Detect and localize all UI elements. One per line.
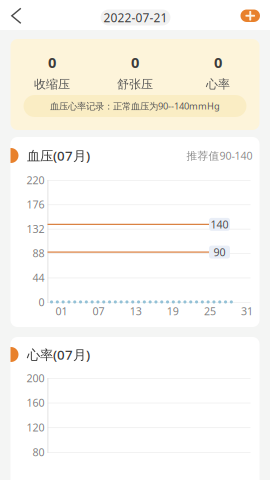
staticText: 0 — [38, 295, 44, 309]
staticText: 血压心率记录：正常血压为90--140mmHg — [50, 100, 220, 112]
staticText: 心率 — [206, 77, 230, 92]
staticText: 90 — [213, 245, 225, 259]
staticText: 31 — [241, 304, 253, 318]
staticText: 01 — [55, 304, 67, 318]
staticText: 25 — [204, 304, 216, 318]
staticText: 0 — [131, 52, 139, 72]
staticText: 舒张压 — [117, 77, 153, 92]
staticText: 2022-07-21 — [103, 9, 167, 25]
staticText: 160 — [26, 396, 44, 410]
staticText: 220 — [26, 173, 44, 187]
staticText: 44 — [32, 270, 44, 285]
staticText: 176 — [26, 197, 44, 211]
button[interactable]: Add record — [237, 6, 263, 25]
staticText: 血压(07月) — [27, 147, 90, 164]
staticText: 88 — [32, 246, 44, 260]
staticText: 0 — [48, 52, 56, 72]
button[interactable]: 2022-07-21 — [100, 9, 170, 25]
staticText: 收缩压 — [34, 77, 70, 92]
staticText: 13 — [130, 304, 142, 318]
staticText: 80 — [32, 445, 44, 459]
staticText: 120 — [26, 420, 44, 434]
staticText: 19 — [167, 304, 179, 318]
staticText: 132 — [26, 222, 44, 236]
button[interactable]: Back — [5, 4, 28, 27]
staticText: 0 — [214, 52, 222, 72]
staticText: 心率(07月) — [27, 346, 90, 363]
staticText: 200 — [26, 371, 44, 385]
staticText: 07 — [93, 304, 105, 318]
staticText: 140 — [210, 217, 228, 231]
staticText: 推荐值90-140 — [186, 148, 252, 163]
